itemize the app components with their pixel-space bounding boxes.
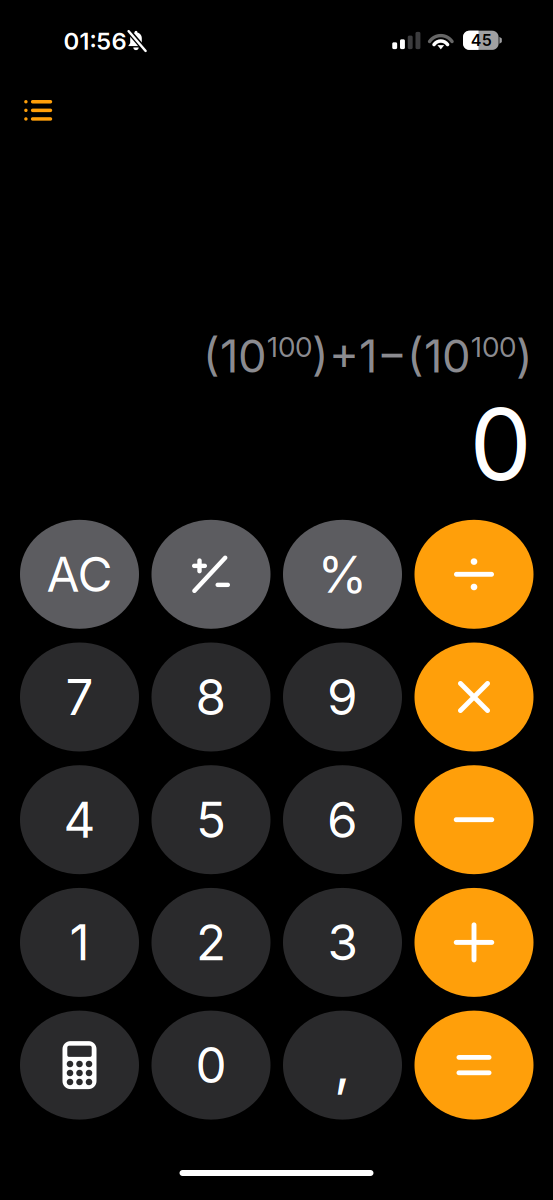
- staticText: 6: [327, 790, 358, 850]
- button[interactable]: [151, 520, 270, 629]
- button[interactable]: 4: [20, 765, 139, 874]
- button[interactable]: 8: [151, 642, 270, 751]
- button[interactable]: 3: [283, 888, 402, 997]
- staticText: )+1−(10: [312, 329, 471, 383]
- button[interactable]: 2: [151, 888, 270, 997]
- staticText: (10: [203, 329, 267, 383]
- staticText: AC: [46, 545, 112, 603]
- staticText: 45: [471, 31, 492, 50]
- button[interactable]: AC: [20, 520, 139, 629]
- button[interactable]: 6: [283, 765, 402, 874]
- staticText: 9: [327, 667, 358, 727]
- button[interactable]: [20, 1011, 139, 1120]
- staticText: 5: [196, 790, 226, 850]
- staticText: 3: [327, 913, 357, 972]
- button[interactable]: ,: [283, 1011, 402, 1120]
- staticText: 100: [471, 330, 516, 364]
- button[interactable]: 0: [151, 1011, 270, 1120]
- staticText: ,: [334, 1028, 351, 1099]
- button[interactable]: [414, 1011, 533, 1120]
- button[interactable]: [414, 642, 533, 751]
- staticText: ): [516, 329, 533, 383]
- staticText: 7: [65, 667, 93, 727]
- button[interactable]: 1: [20, 888, 139, 997]
- button[interactable]: %: [283, 520, 402, 629]
- staticText: 4: [63, 790, 95, 850]
- staticText: %: [317, 544, 367, 605]
- staticText: 2: [196, 913, 226, 972]
- staticText: 0: [195, 1035, 226, 1095]
- button[interactable]: 9: [283, 642, 402, 751]
- staticText: 8: [195, 667, 226, 727]
- staticText: 01:56: [63, 26, 126, 55]
- staticText: 0: [469, 384, 531, 504]
- button[interactable]: History: [4, 79, 72, 141]
- button[interactable]: 7: [20, 642, 139, 751]
- staticText: 1: [69, 913, 89, 972]
- button[interactable]: 5: [151, 765, 270, 874]
- button[interactable]: [414, 888, 533, 997]
- button[interactable]: [414, 520, 533, 629]
- staticText: 100: [267, 330, 312, 364]
- button[interactable]: [414, 765, 533, 874]
